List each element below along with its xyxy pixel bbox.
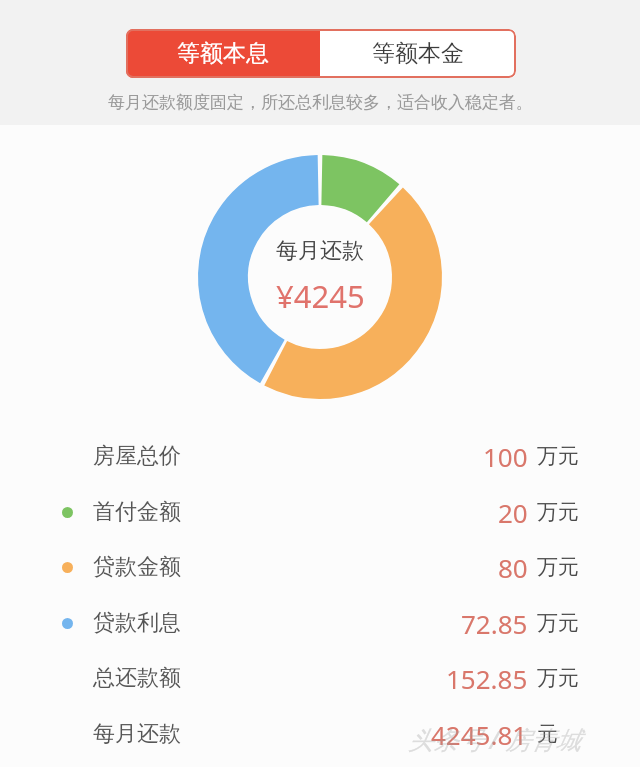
staticText: 等额本息 xyxy=(177,39,269,68)
button[interactable]: 贷款金额 xyxy=(0,544,640,590)
staticText: 首付金额 xyxy=(93,498,181,526)
button[interactable]: 首付金额 xyxy=(0,489,640,535)
staticText: 万元 xyxy=(537,610,579,636)
staticText: 贷款金额 xyxy=(93,553,181,581)
staticText: 万元 xyxy=(537,554,579,580)
staticText: 100 xyxy=(483,439,528,474)
staticText: 头条号 / 房青城 xyxy=(408,722,581,756)
staticText: 房屋总价 xyxy=(93,442,181,470)
button[interactable]: 总还款额 xyxy=(0,655,640,701)
button[interactable]: 等额本息 xyxy=(126,29,320,78)
button[interactable]: 房屋总价 xyxy=(0,433,640,479)
staticText: 万元 xyxy=(537,443,579,469)
staticText: 152.85 xyxy=(446,661,528,696)
staticText: 万元 xyxy=(537,665,579,691)
staticText: ¥4245 xyxy=(276,275,365,317)
staticText: 20 xyxy=(498,495,528,530)
staticText: 每月还款额度固定，所还总利息较多，适合收入稳定者。 xyxy=(108,92,533,113)
staticText: 元 xyxy=(537,721,558,747)
staticText: 等额本金 xyxy=(372,39,464,68)
staticText: 4245.81 xyxy=(431,717,528,752)
button[interactable]: 每月还款 xyxy=(0,711,640,757)
staticText: 贷款利息 xyxy=(93,609,181,637)
button[interactable]: 贷款利息 xyxy=(0,600,640,646)
staticText: 总还款额 xyxy=(93,664,181,692)
staticText: 每月还款 xyxy=(276,237,364,265)
button[interactable]: 等额本金 xyxy=(320,29,516,78)
staticText: 万元 xyxy=(537,499,579,525)
staticText: 每月还款 xyxy=(93,720,181,748)
staticText: 72.85 xyxy=(461,606,528,641)
staticText: 80 xyxy=(498,550,528,585)
